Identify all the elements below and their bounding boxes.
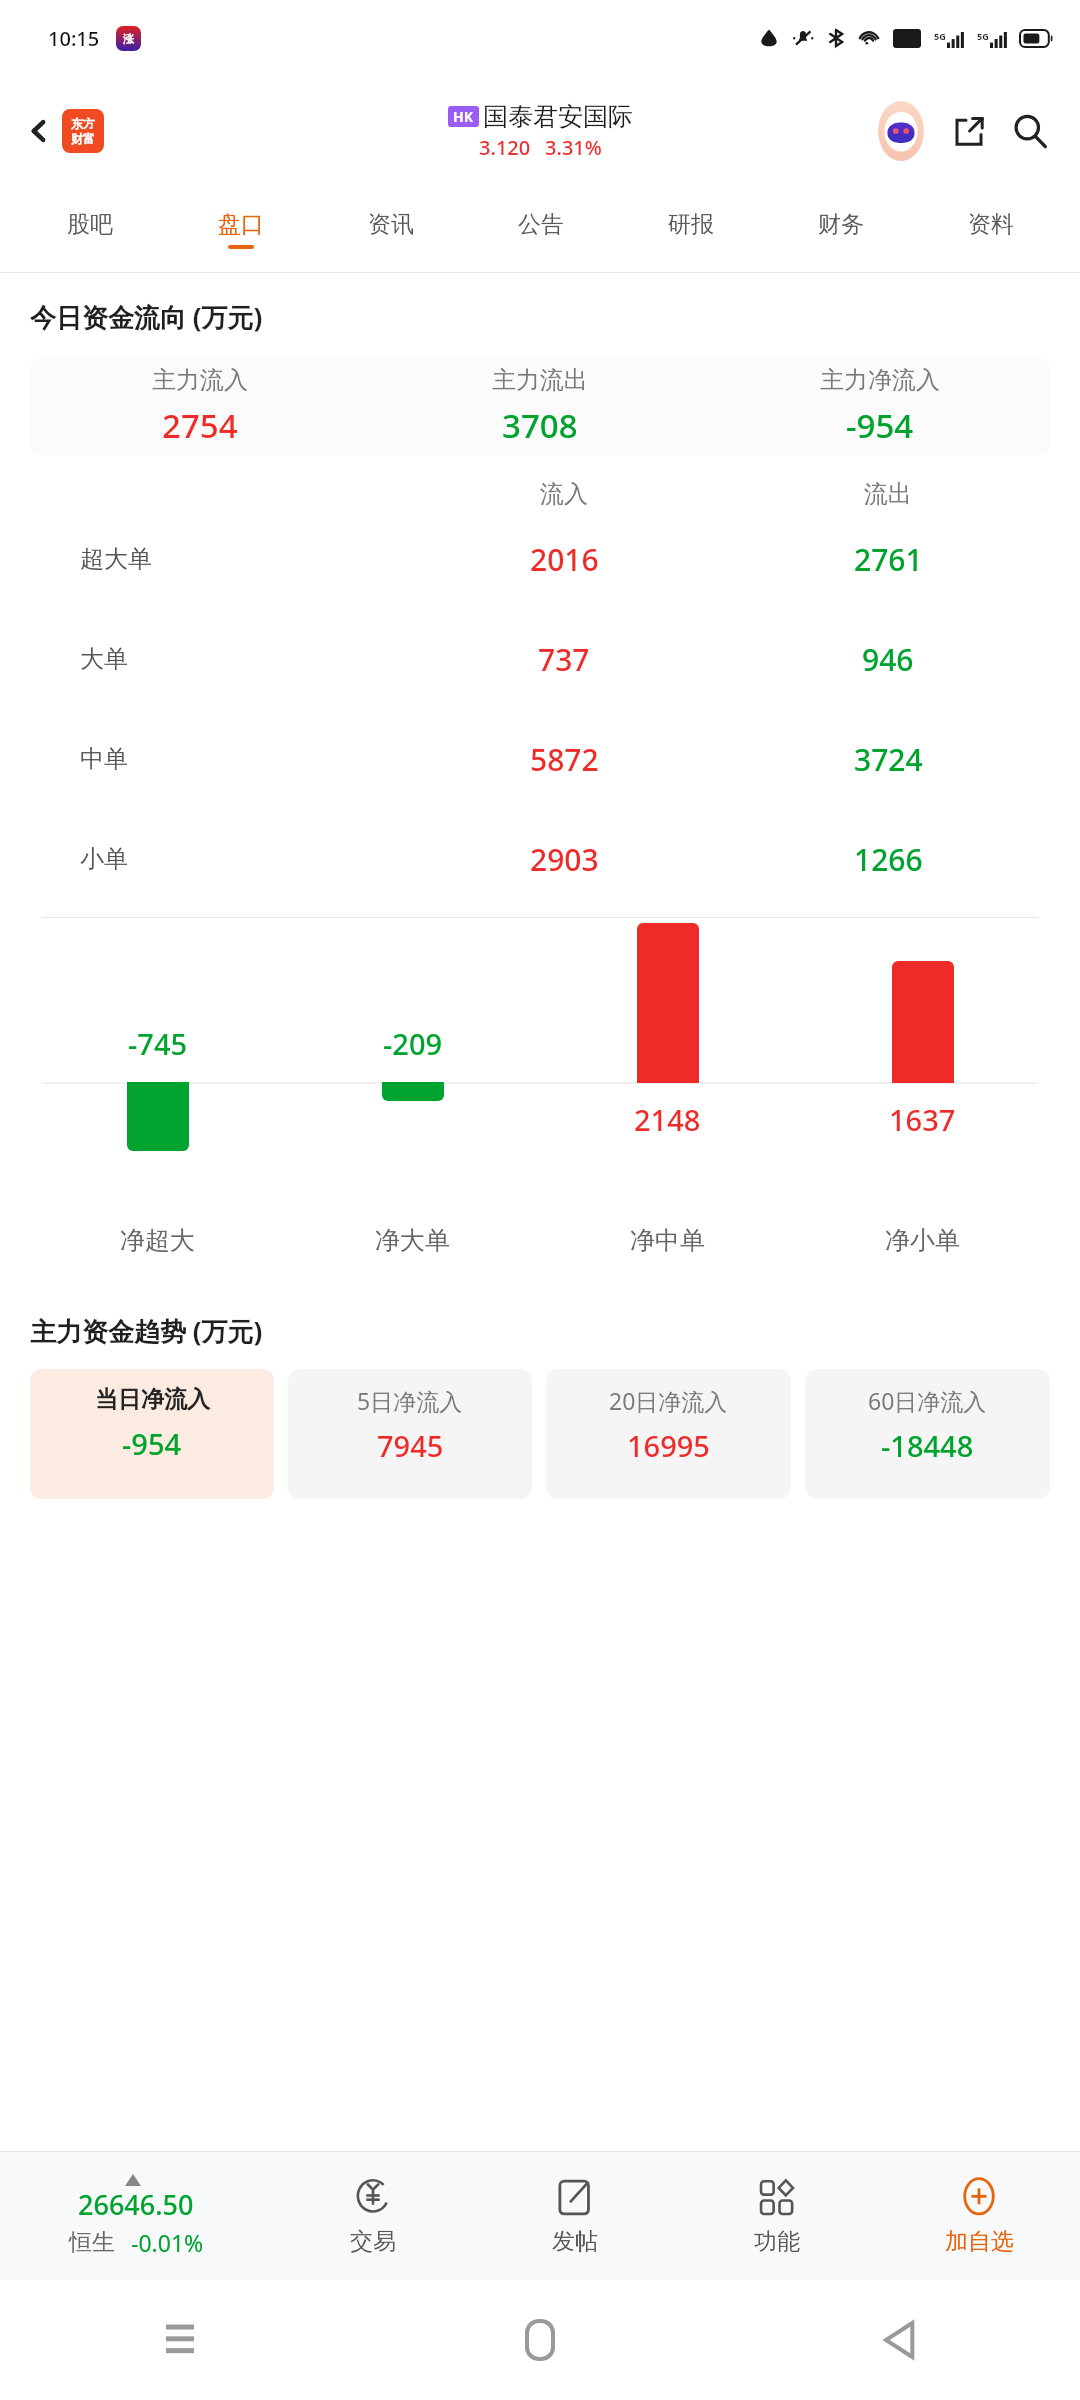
staticText: -209: [383, 1024, 443, 1063]
staticText: 主力资金趋势 (万元): [30, 1313, 263, 1349]
staticText: 国泰君安国际: [483, 101, 633, 132]
staticText: 中单: [80, 744, 128, 774]
button[interactable]: 股吧: [14, 186, 165, 272]
staticText: 3724: [854, 739, 923, 780]
button[interactable]: 中单: [30, 709, 1050, 809]
staticText: 2903: [530, 839, 599, 880]
staticText: 10:15: [48, 25, 100, 52]
staticText: -18448: [881, 1426, 974, 1465]
button[interactable]: 主力流入: [30, 357, 1050, 455]
staticText: 20日净流入: [609, 1385, 728, 1416]
staticText: 净大单: [375, 1225, 450, 1256]
staticText: HK: [453, 107, 474, 126]
staticText: 研报: [668, 210, 714, 239]
staticText: 财富: [71, 131, 95, 146]
staticText: 超大单: [80, 544, 152, 574]
staticText: -954: [122, 1424, 182, 1463]
staticText: 1637: [889, 1100, 956, 1139]
staticText: 当日净流入: [95, 1385, 210, 1414]
button[interactable]: AI助手: [874, 100, 928, 162]
staticText: 发帖: [552, 2227, 598, 2256]
staticText: 盘口: [218, 210, 264, 239]
staticText: -954: [846, 403, 914, 448]
button[interactable]: 超大单: [30, 509, 1050, 609]
staticText: 恒生: [69, 2228, 115, 2257]
staticText: 2016: [530, 539, 599, 580]
button[interactable]: 加自选: [878, 2152, 1080, 2280]
staticText: 2761: [854, 539, 923, 580]
button[interactable]: 返回: [18, 101, 112, 161]
button[interactable]: 返回: [868, 2308, 932, 2372]
button[interactable]: 60日净流入: [805, 1369, 1050, 1499]
staticText: 946: [862, 639, 914, 680]
staticText: 7945: [377, 1426, 444, 1465]
staticText: 主力流出: [492, 365, 588, 395]
button[interactable]: 发帖: [474, 2152, 676, 2280]
staticText: 5872: [530, 739, 599, 780]
staticText: 60日净流入: [868, 1385, 987, 1416]
staticText: 涨: [123, 32, 134, 46]
staticText: 5G: [934, 30, 946, 42]
button[interactable]: 最近任务: [148, 2308, 212, 2372]
button[interactable]: 当日净流入: [30, 1369, 274, 1499]
staticText: 流入: [540, 479, 588, 509]
staticText: 主力流入: [152, 365, 248, 395]
staticText: 5日净流入: [357, 1385, 463, 1416]
staticText: 3708: [502, 403, 578, 448]
staticText: 净小单: [885, 1225, 960, 1256]
staticText: 2754: [162, 403, 238, 448]
button[interactable]: 20日净流入: [546, 1369, 791, 1499]
button[interactable]: 26646.50: [0, 2152, 272, 2280]
staticText: 公告: [518, 210, 564, 239]
staticText: 小单: [80, 844, 128, 874]
staticText: 流出: [864, 479, 912, 509]
button[interactable]: 小单: [30, 809, 1050, 909]
staticText: 东方: [71, 116, 95, 131]
button[interactable]: 主页: [508, 2308, 572, 2372]
staticText: 主力净流入: [820, 365, 940, 395]
staticText: 3.120: [479, 134, 531, 161]
button[interactable]: 搜索: [1004, 105, 1056, 157]
staticText: 2148: [634, 1100, 701, 1139]
button[interactable]: 大单: [30, 609, 1050, 709]
button[interactable]: 研报: [616, 186, 766, 272]
staticText: 737: [538, 639, 590, 680]
staticText: 今日资金流向 (万元): [30, 299, 263, 335]
staticText: 3.31%: [545, 134, 602, 161]
staticText: 资料: [968, 210, 1014, 239]
staticText: 加自选: [945, 2227, 1014, 2256]
staticText: 净超大: [120, 1225, 195, 1256]
button[interactable]: 财务: [766, 186, 916, 272]
staticText: 16995: [627, 1426, 710, 1465]
button[interactable]: 5日净流入: [288, 1369, 532, 1499]
button[interactable]: 公告: [466, 186, 616, 272]
button[interactable]: 交易: [272, 2152, 474, 2280]
staticText: 功能: [754, 2227, 800, 2256]
staticText: 26646.50: [78, 2186, 194, 2223]
staticText: -745: [128, 1024, 188, 1063]
staticText: 1266: [854, 839, 923, 880]
button[interactable]: 分享: [944, 106, 994, 156]
staticText: 财务: [818, 210, 864, 239]
staticText: 5G: [977, 30, 989, 42]
staticText: -0.01%: [131, 2227, 204, 2258]
button[interactable]: 资讯: [316, 186, 466, 272]
staticText: 交易: [350, 2227, 396, 2256]
staticText: 净中单: [630, 1225, 705, 1256]
staticText: 大单: [80, 644, 128, 674]
button[interactable]: 功能: [676, 2152, 878, 2280]
staticText: 股吧: [67, 210, 113, 239]
staticText: 资讯: [368, 210, 414, 239]
button[interactable]: 盘口: [165, 186, 316, 272]
button[interactable]: 资料: [916, 186, 1066, 272]
